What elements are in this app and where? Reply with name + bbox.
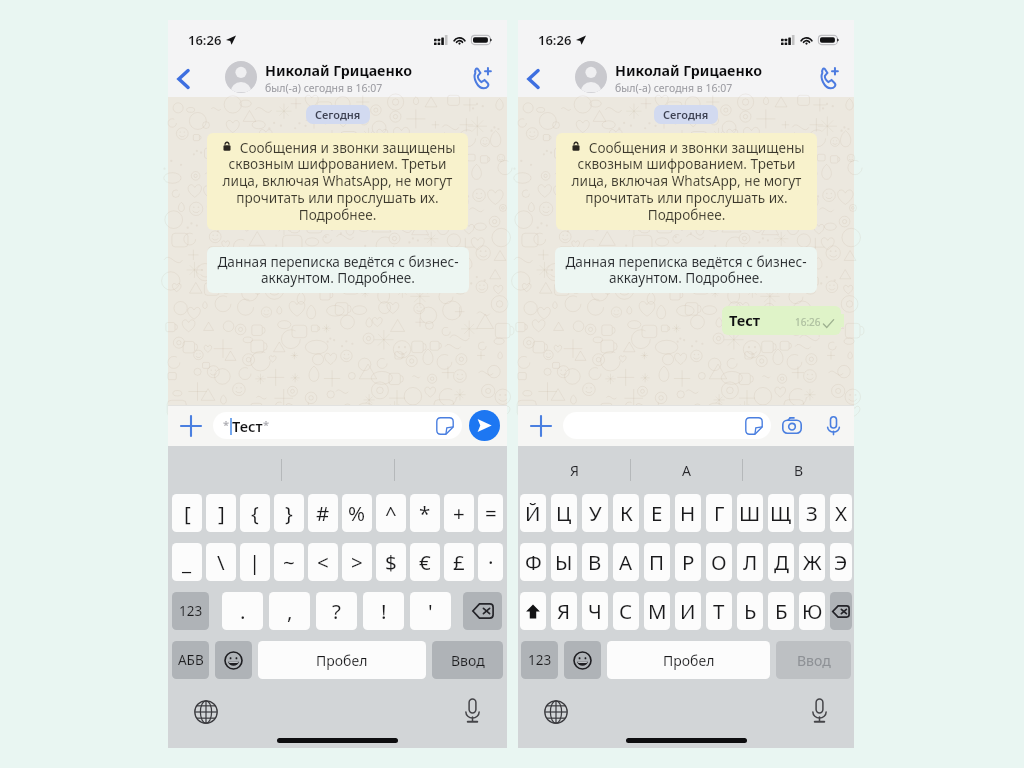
button[interactable]: Back (168, 52, 200, 97)
button[interactable]: { (240, 494, 270, 532)
button[interactable]: 123 (521, 641, 558, 679)
button[interactable]: Я (551, 592, 577, 630)
button[interactable]: С (613, 592, 639, 630)
button[interactable]: Э (830, 543, 852, 581)
button[interactable]: Д (768, 543, 794, 581)
button[interactable]: Пробел (607, 641, 770, 679)
button[interactable]: Данная переписка ведётся с бизнес- аккау… (207, 247, 469, 293)
button[interactable]: Н (675, 494, 701, 532)
button[interactable]: _ (172, 543, 202, 581)
button[interactable]: У (582, 494, 608, 532)
button[interactable]: АБВ (172, 641, 209, 679)
button[interactable]: Т (706, 592, 732, 630)
button[interactable]: Й (520, 494, 546, 532)
button[interactable]: Николай Грицаенко (200, 52, 463, 97)
button[interactable]: Сегодня (654, 105, 718, 124)
button[interactable]: Е (644, 494, 670, 532)
button[interactable]: } (274, 494, 304, 532)
button[interactable]: \ (206, 543, 236, 581)
button[interactable] (564, 641, 601, 679)
button[interactable]: Send (462, 405, 507, 446)
staticText: . (240, 597, 246, 625)
button[interactable]: Stickers (745, 417, 763, 435)
button[interactable]: ? (316, 592, 357, 630)
button[interactable]: В (582, 543, 608, 581)
button[interactable]: # (308, 494, 338, 532)
button[interactable] (520, 592, 546, 630)
button[interactable]: Camera (771, 405, 812, 446)
staticText: £ (453, 548, 465, 576)
button[interactable]: О (706, 543, 732, 581)
button[interactable]: Тест (722, 306, 841, 335)
button[interactable]: = (478, 494, 503, 532)
button[interactable]: Г (706, 494, 732, 532)
button[interactable]: Ф (520, 543, 546, 581)
button[interactable]: Николай Грицаенко (550, 52, 810, 97)
button[interactable]: Change keyboard (544, 700, 568, 724)
staticText: Ж (803, 548, 822, 576)
staticText: был(-а) сегодня в 16:07 (615, 81, 733, 95)
button[interactable]: Add call (810, 52, 854, 97)
staticText: В (588, 548, 602, 576)
button[interactable]: * (213, 412, 462, 439)
button[interactable]: ! (363, 592, 404, 630)
button[interactable]: + (444, 494, 474, 532)
button[interactable]: £ (444, 543, 474, 581)
button[interactable]: Б (768, 592, 794, 630)
button[interactable]: * (410, 494, 440, 532)
button[interactable]: Ж (799, 543, 825, 581)
button[interactable]: ^ (376, 494, 406, 532)
button[interactable]: [ (172, 494, 202, 532)
button[interactable]: Ввод (432, 641, 503, 679)
button[interactable]: , (269, 592, 310, 630)
button[interactable]: Сегодня (306, 105, 370, 124)
button[interactable]: ~ (274, 543, 304, 581)
button[interactable]: Ш (737, 494, 763, 532)
button[interactable]: Back (518, 52, 550, 97)
button[interactable]: Ю (799, 592, 825, 630)
button[interactable]: Щ (768, 494, 794, 532)
staticText: Ю (802, 597, 823, 625)
button[interactable]: Ц (551, 494, 577, 532)
button[interactable]: Х (830, 494, 852, 532)
button[interactable]: Ь (737, 592, 763, 630)
button[interactable]: Dictate (811, 698, 828, 723)
button[interactable]: П (644, 543, 670, 581)
button[interactable]: М (644, 592, 670, 630)
button[interactable]: Dictate (464, 698, 481, 723)
button[interactable]: Ввод (776, 641, 851, 679)
button[interactable]: Пробел (258, 641, 426, 679)
button[interactable]: 123 (172, 592, 209, 630)
button[interactable]: · (478, 543, 503, 581)
button[interactable]: | (240, 543, 270, 581)
button[interactable]: Stickers (563, 412, 771, 439)
button[interactable]: ' (410, 592, 451, 630)
button[interactable]: Сообщения и звонки защищены сквозным шиф… (207, 133, 468, 230)
button[interactable]: Л (737, 543, 763, 581)
button[interactable]: Р (675, 543, 701, 581)
button[interactable] (830, 592, 852, 630)
button[interactable] (463, 592, 502, 630)
button[interactable]: € (410, 543, 440, 581)
button[interactable]: ] (206, 494, 236, 532)
button[interactable] (215, 641, 252, 679)
button[interactable]: . (222, 592, 263, 630)
button[interactable]: > (342, 543, 372, 581)
button[interactable]: $ (376, 543, 406, 581)
button[interactable]: Attach (518, 405, 563, 446)
button[interactable]: А (613, 543, 639, 581)
button[interactable]: % (342, 494, 372, 532)
button[interactable]: Change keyboard (194, 700, 218, 724)
button[interactable]: Stickers (436, 417, 454, 435)
button[interactable]: < (308, 543, 338, 581)
button[interactable]: Ч (582, 592, 608, 630)
button[interactable]: Attach (168, 405, 213, 446)
button[interactable]: Ы (551, 543, 577, 581)
button[interactable]: Voice message (812, 405, 854, 446)
button[interactable]: И (675, 592, 701, 630)
button[interactable]: Add call (463, 52, 507, 97)
button[interactable]: Данная переписка ведётся с бизнес- аккау… (555, 247, 817, 293)
button[interactable]: З (799, 494, 825, 532)
button[interactable]: Сообщения и звонки защищены сквозным шиф… (556, 133, 817, 230)
button[interactable]: К (613, 494, 639, 532)
